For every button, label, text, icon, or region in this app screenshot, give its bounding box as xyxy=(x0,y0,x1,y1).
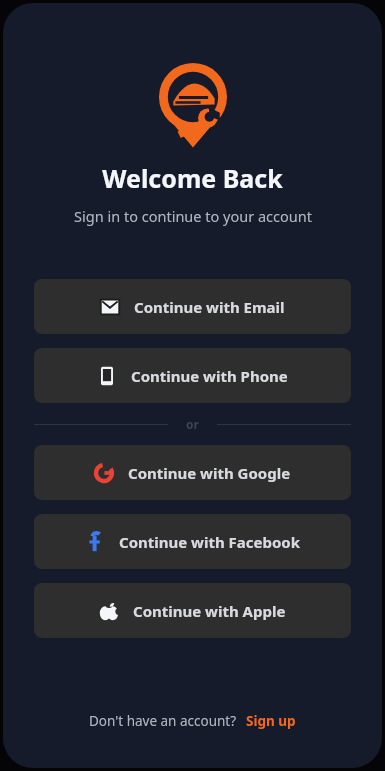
staticText: Continue with Facebook xyxy=(119,532,301,552)
staticText: Sign in to continue to your account xyxy=(74,206,312,226)
staticText: Continue with Google xyxy=(128,463,291,483)
staticText: Continue with Phone xyxy=(131,366,288,386)
button[interactable]: Continue with Phone xyxy=(34,348,351,403)
button[interactable]: Continue with Facebook xyxy=(34,514,351,569)
staticText: Continue with Apple xyxy=(133,601,286,621)
staticText: Don't have an account? xyxy=(89,712,237,730)
button[interactable]: Continue with Email xyxy=(34,279,351,334)
staticText: Welcome Back xyxy=(102,161,283,195)
staticText: or xyxy=(186,416,199,432)
button[interactable]: Sign up xyxy=(246,712,296,730)
staticText: Sign up xyxy=(246,712,296,730)
button[interactable]: Continue with Google xyxy=(34,445,351,500)
staticText: Continue with Email xyxy=(134,297,285,317)
button[interactable]: Continue with Apple xyxy=(34,583,351,638)
